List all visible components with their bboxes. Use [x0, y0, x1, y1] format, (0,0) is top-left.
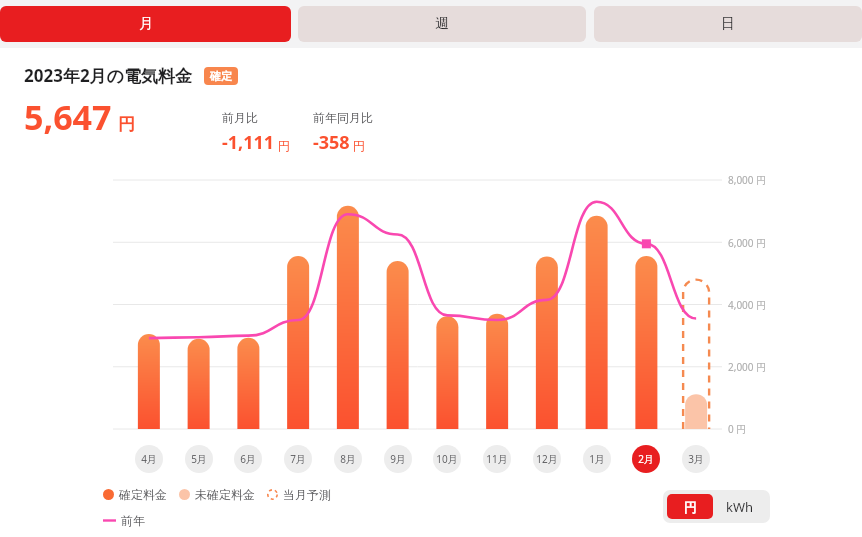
staticText: 11月	[486, 452, 508, 466]
staticText: 円	[684, 499, 697, 515]
button[interactable]: 円	[667, 494, 713, 519]
staticText: 7月	[290, 452, 306, 466]
button[interactable]: 11月	[483, 445, 511, 473]
staticText: 8月	[340, 452, 356, 466]
staticText: 12月	[536, 452, 558, 466]
button[interactable]: 1月	[583, 445, 611, 473]
staticText: 2023年2月の電気料金	[24, 64, 193, 87]
staticText: 5,647	[24, 94, 112, 140]
button[interactable]: 8月	[334, 445, 362, 473]
button[interactable]: 12月	[533, 445, 561, 473]
staticText: 未確定料金	[195, 487, 255, 502]
staticText: 円	[353, 138, 365, 153]
staticText: 前年同月比	[313, 110, 373, 125]
staticText: 3月	[688, 452, 704, 466]
staticText: 前月比	[222, 110, 258, 125]
staticText: -1,111	[222, 130, 275, 155]
staticText: 4,000 円	[728, 298, 767, 312]
button[interactable]: 4月	[135, 445, 163, 473]
button[interactable]: 2月	[632, 445, 660, 473]
staticText: 1月	[589, 452, 605, 466]
button[interactable]: 日	[594, 6, 862, 42]
staticText: 日	[721, 15, 735, 33]
staticText: 当月予測	[283, 487, 331, 502]
staticText: 週	[435, 15, 449, 33]
button[interactable]: 7月	[284, 445, 312, 473]
button[interactable]: 月	[0, 6, 291, 42]
staticText: 円	[278, 138, 290, 153]
staticText: 0 円	[728, 422, 747, 436]
staticText: 確定	[210, 69, 232, 83]
staticText: 5月	[191, 452, 207, 466]
staticText: 4月	[141, 452, 157, 466]
button[interactable]: kWh	[713, 494, 766, 519]
staticText: -358	[313, 130, 350, 155]
staticText: 円	[118, 114, 135, 135]
button[interactable]: 5月	[185, 445, 213, 473]
button[interactable]: 10月	[433, 445, 461, 473]
staticText: 2月	[638, 452, 654, 466]
staticText: 10月	[436, 452, 458, 466]
button[interactable]: 3月	[682, 445, 710, 473]
staticText: 9月	[390, 452, 406, 466]
staticText: 8,000 円	[728, 173, 767, 187]
button[interactable]: 週	[298, 6, 586, 42]
staticText: 6,000 円	[728, 236, 767, 250]
staticText: 確定料金	[119, 487, 167, 502]
staticText: 前年	[121, 513, 145, 528]
button[interactable]: 9月	[384, 445, 412, 473]
staticText: kWh	[726, 498, 754, 516]
staticText: 6月	[240, 452, 256, 466]
button[interactable]: 6月	[234, 445, 262, 473]
staticText: 月	[139, 15, 153, 33]
button[interactable]: 確定	[204, 67, 238, 85]
staticText: 2,000 円	[728, 360, 767, 374]
